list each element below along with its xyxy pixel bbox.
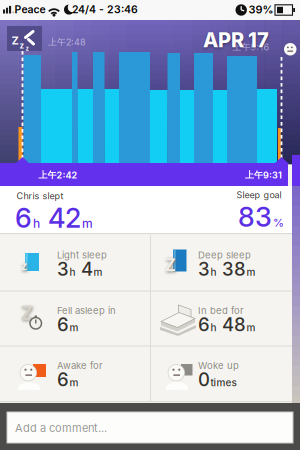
staticText: Light sleep bbox=[57, 249, 107, 261]
staticText: 6 bbox=[57, 368, 69, 391]
staticText: In bed for bbox=[198, 305, 244, 316]
staticText: Fell asleep in bbox=[57, 305, 116, 316]
staticText: z bbox=[19, 41, 24, 50]
staticText: 上午9:31 bbox=[245, 169, 282, 181]
staticText: m bbox=[69, 321, 78, 334]
staticText: Woke up bbox=[198, 360, 239, 371]
staticText: m bbox=[82, 216, 93, 231]
staticText: APR 17 bbox=[203, 28, 269, 52]
staticText: 4 bbox=[76, 258, 93, 280]
staticText: 6 bbox=[57, 313, 69, 336]
staticText: 6 bbox=[198, 313, 210, 336]
button[interactable]: Z bbox=[7, 26, 42, 51]
staticText: Sleep goal bbox=[236, 190, 281, 200]
staticText: Z bbox=[164, 255, 175, 275]
staticText: h bbox=[69, 266, 75, 278]
staticText: 39% bbox=[248, 3, 273, 16]
staticText: m bbox=[246, 321, 255, 334]
staticText: Awake for bbox=[57, 360, 103, 371]
staticText: z bbox=[20, 259, 27, 273]
staticText: h bbox=[33, 216, 40, 231]
staticText: 3 bbox=[57, 258, 69, 280]
staticText: Z bbox=[11, 34, 18, 47]
staticText: Add a comment... bbox=[15, 421, 107, 435]
staticText: h bbox=[210, 321, 216, 334]
staticText: 3 bbox=[198, 258, 210, 280]
staticText: m bbox=[69, 376, 78, 389]
staticText: 上午2:48 bbox=[48, 36, 86, 48]
staticText: m bbox=[246, 266, 255, 278]
staticText: Peace bbox=[14, 3, 45, 16]
staticText: Chris slept bbox=[16, 191, 63, 201]
staticText: m bbox=[93, 266, 102, 278]
staticText: 42 bbox=[41, 202, 81, 234]
staticText: Deep sleep bbox=[198, 249, 251, 261]
staticText: 0 bbox=[198, 368, 210, 391]
staticText: 24/4 - 23:46 bbox=[72, 3, 138, 16]
staticText: 38 bbox=[217, 258, 246, 280]
staticText: % bbox=[273, 216, 284, 229]
staticText: z bbox=[25, 45, 28, 52]
staticText: h bbox=[210, 266, 216, 278]
staticText: Z bbox=[20, 301, 33, 324]
staticText: 上午9:16 bbox=[232, 41, 269, 53]
staticText: 6 bbox=[15, 202, 32, 234]
staticText: 上午2:42 bbox=[38, 169, 77, 181]
staticText: 48 bbox=[217, 313, 246, 336]
button[interactable]: Add a comment... bbox=[0, 0, 300, 450]
staticText: 83 bbox=[238, 201, 272, 233]
staticText: times bbox=[210, 376, 236, 389]
